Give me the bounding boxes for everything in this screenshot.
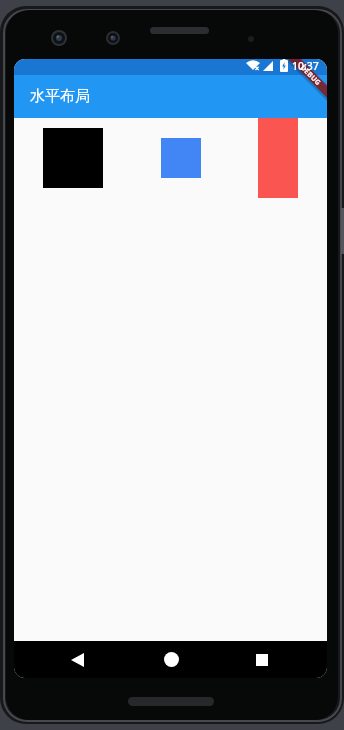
button[interactable]: 水平布局 bbox=[14, 75, 327, 118]
staticText: 10:37 bbox=[292, 59, 319, 72]
staticText: 水平布局 bbox=[30, 87, 90, 106]
button[interactable] bbox=[158, 646, 185, 673]
button[interactable] bbox=[64, 646, 91, 673]
button[interactable] bbox=[248, 646, 275, 673]
staticText: DEBUG bbox=[299, 63, 323, 88]
